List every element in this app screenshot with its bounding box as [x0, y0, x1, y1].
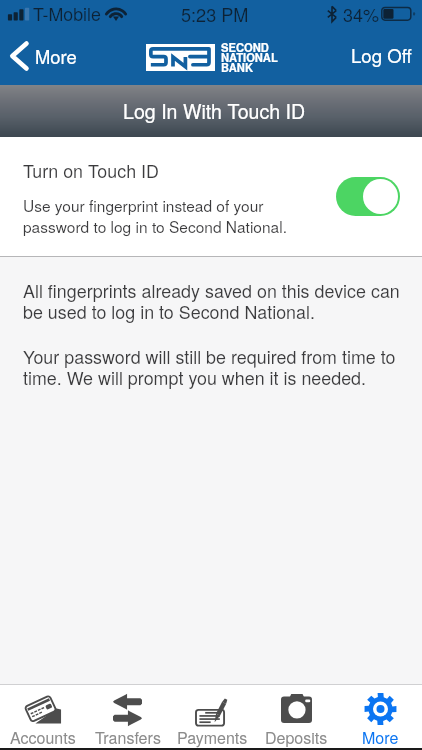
staticText: Transfers — [95, 726, 161, 749]
button[interactable]: More — [338, 685, 422, 748]
button[interactable]: Deposits — [254, 685, 338, 748]
staticText: 34% — [343, 1, 380, 27]
staticText: SECOND — [221, 39, 269, 55]
staticText: All fingerprints already saved on this d… — [23, 277, 400, 325]
staticText: 5:23 PM — [181, 1, 249, 27]
staticText: Log Off — [351, 42, 412, 69]
button[interactable]: Transfers — [85, 685, 170, 748]
staticText: Accounts — [10, 726, 76, 749]
staticText: Deposits — [265, 726, 328, 749]
button[interactable]: Accounts — [0, 685, 85, 748]
staticText: NATIONAL — [221, 49, 278, 65]
button[interactable]: Turn on Touch ID — [336, 177, 400, 216]
staticText: Your password will still be required fro… — [23, 343, 396, 391]
button[interactable]: Log Off — [341, 26, 422, 85]
staticText: More — [35, 43, 77, 69]
button[interactable]: More — [0, 26, 87, 85]
staticText: More — [362, 726, 399, 749]
staticText: Turn on Touch ID — [23, 157, 159, 183]
staticText: Use your fingerprint instead of your pas… — [23, 194, 287, 238]
button[interactable]: Payments — [170, 685, 254, 748]
staticText: Log In With Touch ID — [123, 96, 306, 124]
staticText: Payments — [177, 726, 248, 749]
staticText: T-Mobile — [33, 1, 101, 26]
staticText: BANK — [221, 59, 253, 75]
